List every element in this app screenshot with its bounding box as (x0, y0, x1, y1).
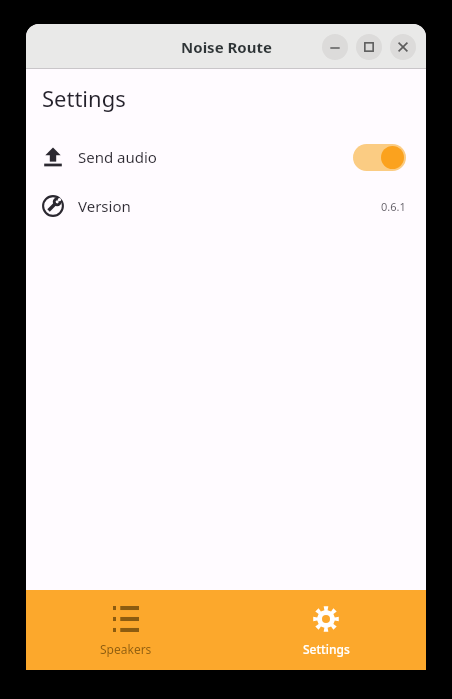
staticText: Noise Route (181, 37, 272, 57)
staticText: Settings (42, 83, 126, 113)
staticText: Speakers (100, 641, 152, 657)
button[interactable]: Send audio (26, 135, 426, 179)
staticText: 0.6.1 (381, 199, 406, 214)
staticText: Send audio (78, 147, 157, 167)
button[interactable]: Minimize (322, 34, 348, 60)
button[interactable]: Speakers (26, 590, 226, 670)
button[interactable]: Send audio toggle, on (353, 144, 406, 171)
button[interactable]: Close (390, 34, 416, 60)
button[interactable]: Version (26, 186, 426, 226)
staticText: Version (78, 196, 131, 216)
staticText: Settings (303, 641, 350, 657)
button[interactable]: Maximize (356, 34, 382, 60)
button[interactable]: Settings (226, 590, 426, 670)
